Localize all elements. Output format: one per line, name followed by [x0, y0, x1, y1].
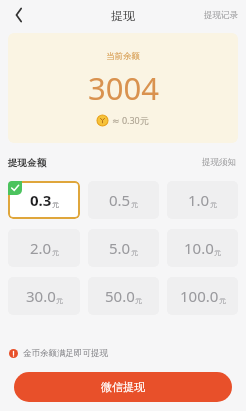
button[interactable]: 0.5 [88, 181, 159, 219]
staticText: 提现须知 [202, 157, 236, 168]
button[interactable]: 100.0 [167, 277, 238, 315]
button[interactable]: Back [6, 2, 32, 28]
button[interactable]: 10.0 [167, 229, 238, 267]
staticText: 元 [131, 200, 138, 209]
staticText: 0.5 [109, 190, 131, 210]
staticText: 30.0 [26, 286, 56, 306]
button[interactable]: 提现须知 [200, 154, 238, 171]
staticText: 10.0 [184, 238, 214, 258]
staticText: ≈ 0.30元 [112, 114, 149, 126]
button[interactable]: 2.0 [8, 229, 80, 267]
staticText: 元 [52, 200, 59, 209]
staticText: 5.0 [109, 238, 131, 258]
button[interactable]: 提现记录 [196, 6, 246, 25]
staticText: 2.0 [30, 238, 52, 258]
staticText: 0.3 [30, 190, 52, 210]
staticText: 微信提现 [101, 380, 145, 394]
staticText: 3004 [88, 67, 159, 109]
staticText: 1.0 [188, 190, 210, 210]
staticText: 元 [210, 200, 217, 209]
button[interactable]: 微信提现 [14, 372, 232, 402]
staticText: 提现 [111, 8, 135, 23]
button[interactable]: 50.0 [88, 277, 159, 315]
button[interactable]: 30.0 [8, 277, 80, 315]
staticText: 50.0 [105, 286, 135, 306]
button[interactable]: 5.0 [88, 229, 159, 267]
staticText: 元 [135, 296, 142, 305]
staticText: 提现金额 [8, 157, 46, 169]
button[interactable]: 0.3 [8, 181, 80, 219]
staticText: 当前余额 [106, 51, 140, 62]
staticText: 100.0 [180, 286, 219, 306]
staticText: 提现记录 [204, 10, 238, 21]
staticText: 元 [56, 296, 63, 305]
staticText: 金币余额满足即可提现 [23, 348, 108, 359]
staticText: 元 [131, 248, 138, 257]
staticText: 元 [52, 248, 59, 257]
staticText: 元 [214, 248, 221, 257]
staticText: 元 [219, 296, 226, 305]
button[interactable]: 1.0 [167, 181, 238, 219]
